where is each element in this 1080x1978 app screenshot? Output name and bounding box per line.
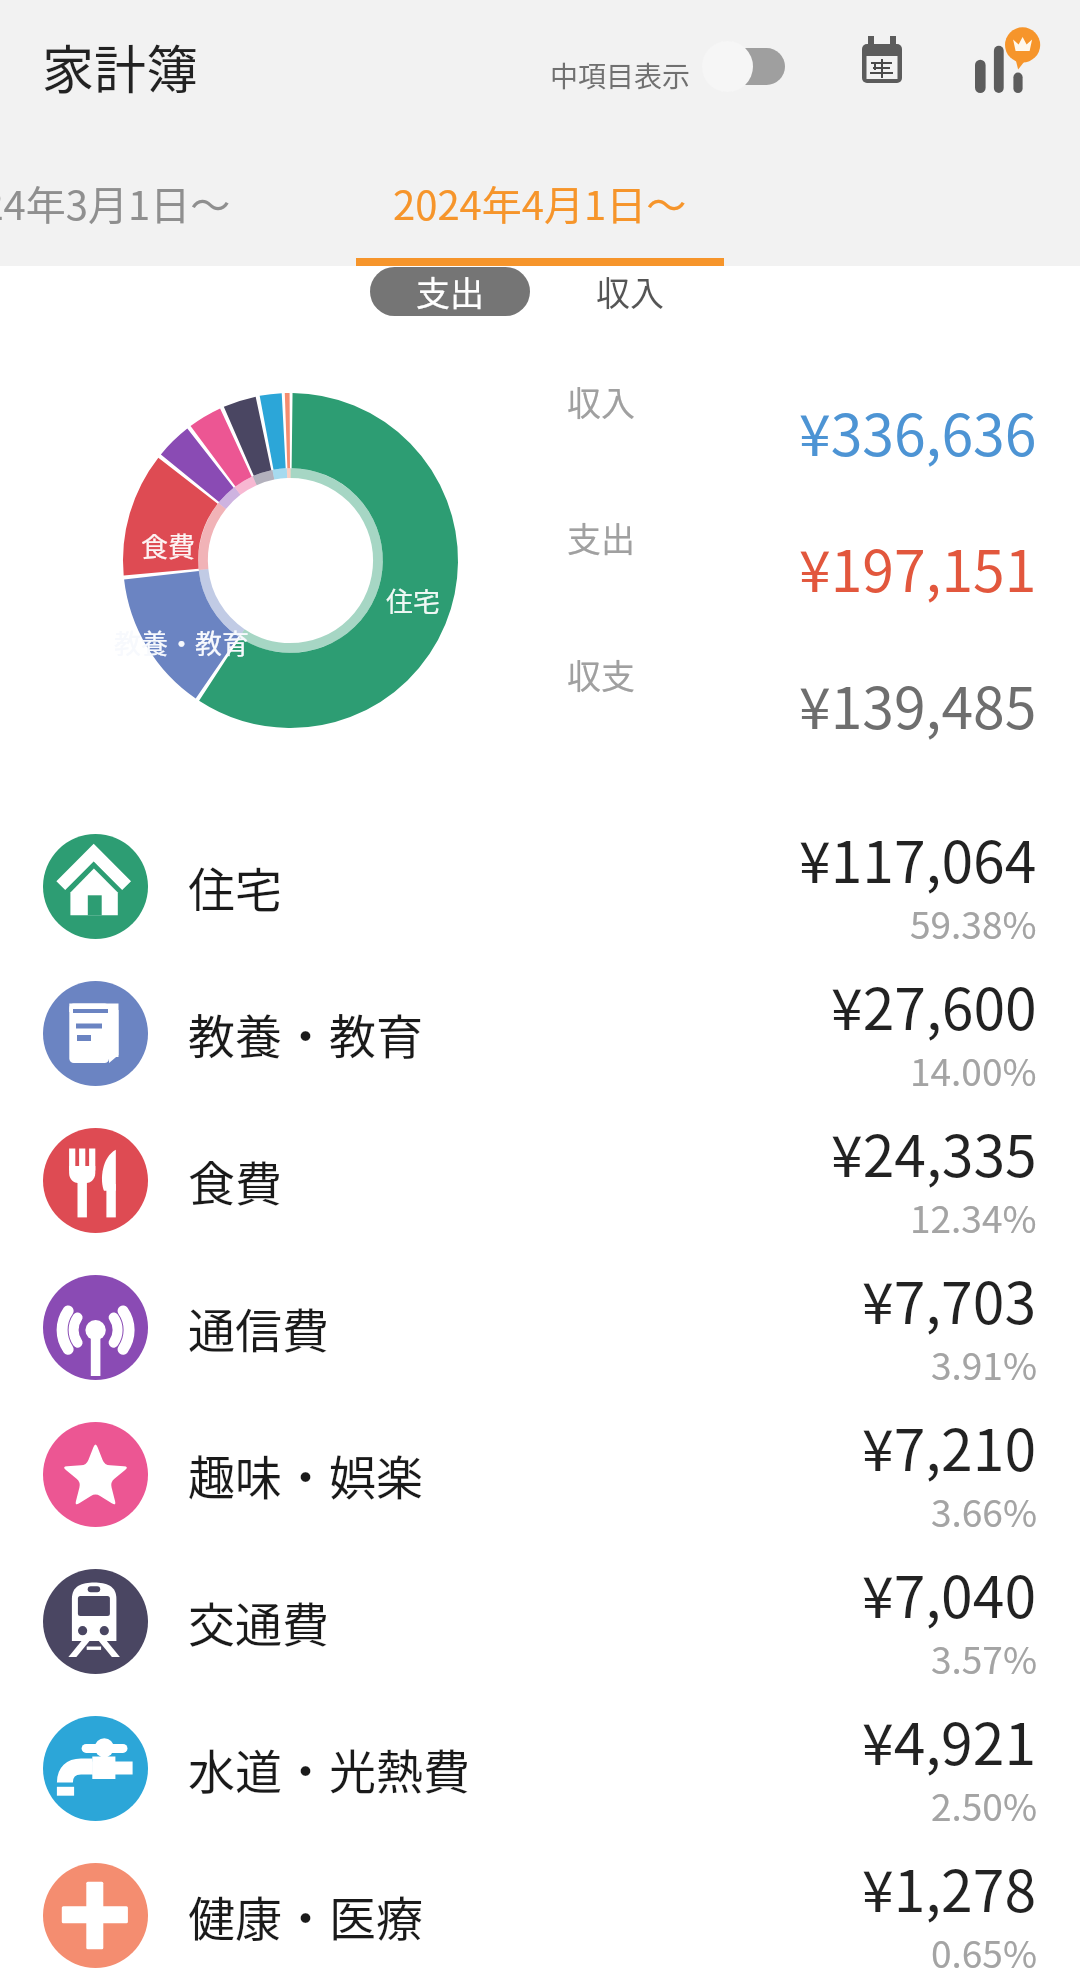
staticText: ¥27,600 [831, 964, 1037, 1047]
button[interactable]: 収入 [550, 267, 710, 316]
button[interactable]: 趣味・娯楽 [0, 1403, 1080, 1550]
staticText: 趣味・娯楽 [188, 1440, 423, 1508]
staticText: 支出 [567, 513, 635, 562]
staticText: 住宅 [188, 852, 282, 920]
staticText: 収支 [567, 650, 635, 699]
staticText: 水道・光熱費 [188, 1734, 470, 1802]
staticText: ¥7,210 [862, 1405, 1037, 1488]
staticText: 中項目表示 [550, 55, 691, 96]
staticText: ¥1,278 [862, 1846, 1037, 1929]
staticText: 2.50% [931, 1778, 1037, 1832]
staticText: 0.65% [931, 1925, 1037, 1978]
button[interactable]: 健康・医療 [0, 1844, 1080, 1978]
staticText: 3.57% [931, 1631, 1037, 1685]
staticText: 収入 [596, 267, 664, 316]
button[interactable]: 収入 [520, 377, 1040, 497]
staticText: 12.34% [910, 1190, 1037, 1244]
staticText: 14.00% [910, 1043, 1037, 1097]
staticText: 収入 [567, 377, 635, 426]
staticText: ¥139,485 [799, 663, 1037, 746]
button[interactable]: 中項目表示 [530, 22, 800, 110]
button[interactable]: 住宅 [0, 815, 1080, 962]
button[interactable]: 2024年3月1日〜 [0, 148, 312, 258]
button[interactable]: 教養・教育 [0, 962, 1080, 1109]
staticText: ¥197,151 [799, 526, 1037, 609]
staticText: 3.91% [931, 1337, 1037, 1391]
staticText: ¥117,064 [799, 817, 1037, 900]
staticText: 2024年4月1日〜 [393, 174, 687, 232]
button[interactable]: 水道・光熱費 [0, 1697, 1080, 1844]
staticText: ¥24,335 [831, 1111, 1037, 1194]
staticText: 教養・教育 [114, 623, 249, 662]
staticText: 健康・医療 [188, 1881, 423, 1949]
button[interactable]: 交通費 [0, 1550, 1080, 1697]
staticText: 通信費 [188, 1293, 329, 1361]
button[interactable]: 食費 [0, 1109, 1080, 1256]
staticText: 教養・教育 [188, 999, 423, 1067]
staticText: 支出 [416, 267, 484, 316]
button[interactable]: 2024年4月1日〜 [312, 148, 768, 258]
button[interactable]: 通信費 [0, 1256, 1080, 1403]
staticText: 2024年3月1日〜 [0, 174, 231, 232]
button[interactable]: 収支 [520, 650, 1040, 770]
staticText: 食費 [188, 1146, 282, 1214]
button[interactable]: Reports [958, 10, 1058, 110]
staticText: 食費 [141, 526, 195, 565]
staticText: ¥7,040 [862, 1552, 1037, 1635]
staticText: ¥336,636 [799, 390, 1037, 473]
staticText: 家計簿 [42, 29, 199, 104]
staticText: ¥7,703 [862, 1258, 1037, 1341]
button[interactable]: Yearly calendar [840, 16, 928, 104]
staticText: 交通費 [188, 1587, 329, 1655]
staticText: ¥4,921 [862, 1699, 1037, 1782]
staticText: 住宅 [386, 581, 440, 620]
button[interactable]: 支出 [370, 267, 530, 316]
button[interactable]: 支出 [520, 513, 1040, 633]
staticText: 59.38% [910, 896, 1037, 950]
staticText: 3.66% [931, 1484, 1037, 1538]
